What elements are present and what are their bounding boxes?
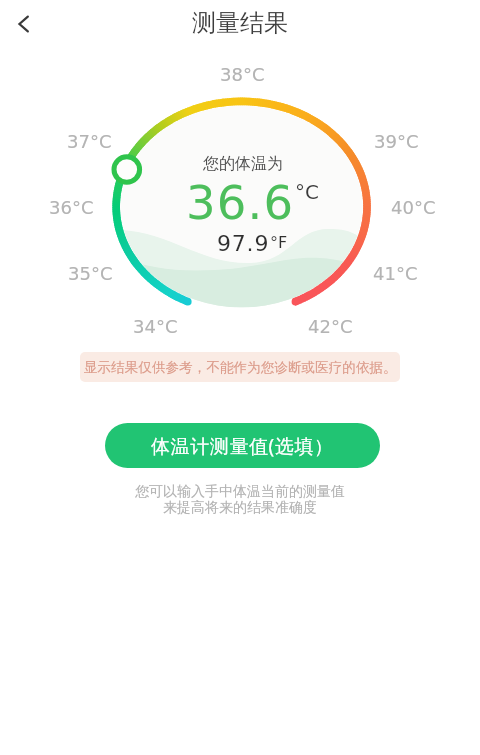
staticText: 您的体温为 — [203, 154, 283, 174]
staticText: 36.6 — [186, 176, 295, 230]
button[interactable]: Back — [0, 0, 48, 48]
staticText: 您可以输入手中体温当前的测量值 来提高将来的结果准确度 — [0, 483, 480, 516]
staticText: 42°C — [308, 316, 353, 337]
staticText: °F — [270, 233, 288, 252]
staticText: 体温计测量值(选填） — [151, 433, 334, 459]
staticText: 97.9 — [217, 231, 270, 257]
button[interactable]: 体温计测量值(选填） — [105, 423, 380, 468]
staticText: 41°C — [373, 263, 418, 284]
staticText: °C — [295, 180, 319, 203]
staticText: 36°C — [49, 197, 94, 218]
staticText: 34°C — [133, 316, 178, 337]
staticText: 39°C — [374, 131, 419, 152]
staticText: 35°C — [68, 263, 113, 284]
staticText: 显示结果仅供参考，不能作为您诊断或医疗的依据。 — [84, 359, 397, 376]
staticText: 38°C — [220, 64, 265, 85]
staticText: 测量结果 — [192, 8, 288, 38]
staticText: 37°C — [67, 131, 112, 152]
staticText: 40°C — [391, 197, 436, 218]
